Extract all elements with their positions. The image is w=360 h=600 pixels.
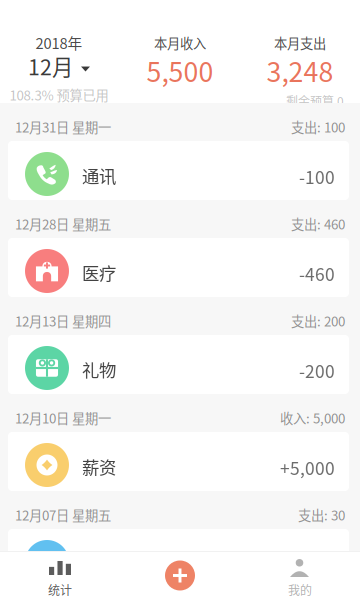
staticText: 支出: 100 <box>291 117 345 136</box>
staticText: 支出: 200 <box>291 311 345 330</box>
staticText: 12月13日 星期四 <box>15 311 111 330</box>
staticText: 通讯 <box>82 163 116 188</box>
staticText: -100 <box>299 164 335 189</box>
staticText: +5,000 <box>280 455 335 480</box>
staticText: 3,248 <box>266 51 333 90</box>
button[interactable]: 通讯 <box>0 141 360 200</box>
staticText: 12月31日 星期一 <box>15 117 111 136</box>
staticText: 礼物 <box>82 357 116 382</box>
staticText: 收入: 5,000 <box>280 408 345 427</box>
staticText: 108.3% 预算已用 <box>9 85 108 104</box>
button[interactable]: 礼物 <box>0 335 360 394</box>
staticText: 2018年 <box>35 32 82 53</box>
staticText: 薪资 <box>82 454 116 479</box>
button[interactable]: 医疗 <box>0 238 360 297</box>
button[interactable]: 统计 <box>0 551 120 600</box>
button[interactable]: 薪资 <box>0 432 360 491</box>
staticText: 剩余预算 0 <box>286 92 344 109</box>
staticText: 支出: 30 <box>298 505 345 524</box>
button[interactable]: 我的 <box>240 551 360 600</box>
button[interactable]: 记一笔 <box>120 551 240 600</box>
staticText: 本月收入 <box>154 33 206 52</box>
staticText: 5,500 <box>146 51 213 90</box>
staticText: -460 <box>299 261 335 286</box>
staticText: -200 <box>299 358 335 383</box>
staticText: 统计 <box>48 581 72 598</box>
button[interactable]: 运动 <box>0 529 360 588</box>
staticText: 我的 <box>288 581 312 598</box>
staticText: 12月07日 星期五 <box>15 505 111 524</box>
staticText: 支出: 460 <box>291 214 345 233</box>
staticText: 本月支出 <box>274 33 326 52</box>
staticText: 12月10日 星期一 <box>15 408 111 427</box>
staticText: 医疗 <box>82 260 116 285</box>
staticText: 12月28日 星期五 <box>15 214 111 233</box>
staticText: 12月 <box>28 51 73 81</box>
button[interactable]: 12月 <box>0 53 118 79</box>
